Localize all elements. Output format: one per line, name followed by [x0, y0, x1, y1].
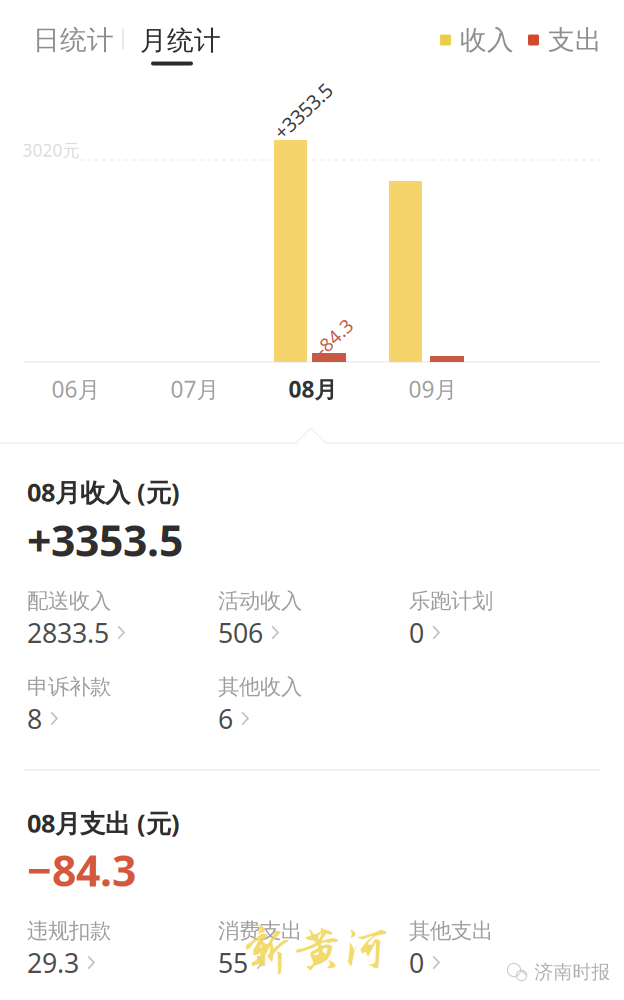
staticText: 收入 — [460, 24, 514, 56]
staticText: 活动收入 — [218, 588, 302, 614]
staticText: 月统计 — [140, 24, 221, 57]
staticText: 55 — [218, 945, 248, 980]
staticText: −84.3 — [27, 842, 136, 898]
staticText: 支出 — [548, 24, 602, 56]
button[interactable]: 配送收入 — [27, 588, 177, 650]
button[interactable]: 申诉补款 — [27, 674, 177, 736]
staticText: 6 — [218, 701, 233, 736]
staticText: 济南时报 — [534, 960, 610, 983]
staticText: 违规扣款 — [27, 918, 111, 944]
staticText: 2833.5 — [27, 615, 109, 650]
staticText: 506 — [218, 615, 263, 650]
staticText: 08月 — [288, 374, 337, 404]
staticText: +3353.5 — [267, 98, 338, 124]
staticText: -84.3 — [312, 325, 356, 349]
staticText: 配送收入 — [27, 588, 111, 614]
staticText: 新黄河 — [242, 922, 392, 978]
button[interactable]: 日统计 — [33, 20, 125, 60]
staticText: 08月支出 (元) — [27, 806, 180, 840]
button[interactable]: 其他收入 — [218, 674, 368, 736]
staticText: 06月 — [51, 374, 100, 404]
staticText: 日统计 — [33, 24, 114, 56]
button[interactable]: 月统计 — [129, 24, 247, 65]
staticText: 消费支出 — [218, 918, 302, 944]
staticText: 申诉补款 — [27, 674, 111, 700]
button[interactable]: 乐跑计划 — [409, 588, 559, 650]
staticText: 07月 — [170, 374, 219, 404]
staticText: 08月收入 (元) — [27, 475, 180, 509]
button[interactable]: 活动收入 — [218, 588, 368, 650]
staticText: 09月 — [408, 374, 457, 404]
button[interactable]: 消费支出 — [218, 918, 368, 980]
staticText: 其他收入 — [218, 674, 302, 700]
staticText: +3353.5 — [27, 512, 183, 568]
staticText: 29.3 — [27, 945, 79, 980]
staticText: 3020元 — [22, 138, 79, 161]
button[interactable]: 其他支出 — [409, 918, 559, 980]
staticText: 乐跑计划 — [409, 588, 493, 614]
staticText: 0 — [409, 615, 424, 650]
button[interactable]: 违规扣款 — [27, 918, 177, 980]
staticText: 0 — [409, 945, 424, 980]
staticText: 其他支出 — [409, 918, 493, 944]
staticText: 8 — [27, 701, 42, 736]
